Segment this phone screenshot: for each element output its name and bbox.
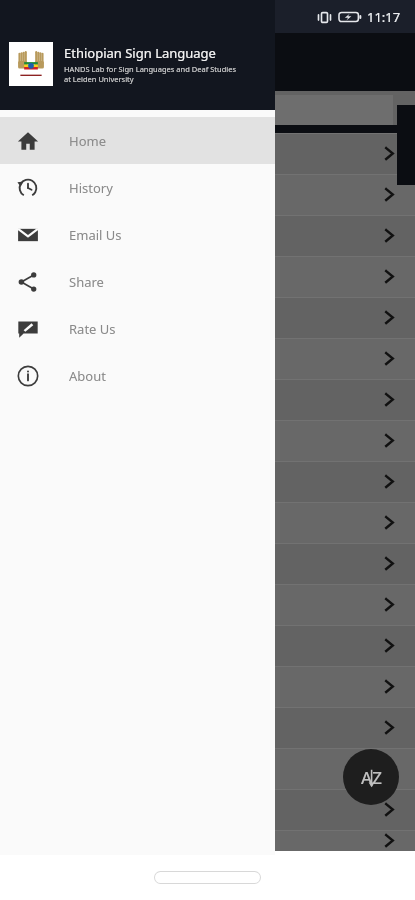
button[interactable]	[0, 133, 415, 174]
button[interactable]	[0, 625, 415, 666]
button[interactable]	[0, 338, 415, 379]
staticText: AZ	[361, 766, 382, 789]
staticText: Share	[69, 273, 104, 291]
staticText: Home	[69, 132, 106, 150]
button[interactable]	[0, 543, 415, 584]
staticText: Rate Us	[69, 320, 116, 338]
button[interactable]: Rate Us	[0, 305, 275, 352]
button[interactable]	[0, 789, 415, 830]
button[interactable]: Share	[0, 258, 275, 305]
button[interactable]	[0, 666, 415, 707]
staticText: HANDS Lab for Sign Languages and Deaf St…	[64, 64, 236, 84]
button[interactable]	[0, 256, 415, 297]
button[interactable]: Email Us	[0, 211, 275, 258]
button[interactable]	[0, 297, 415, 338]
button[interactable]	[10, 95, 393, 125]
button[interactable]	[0, 174, 415, 215]
button[interactable]	[0, 707, 415, 748]
staticText: Ethiopian Sign Language	[64, 44, 216, 62]
button[interactable]: History	[0, 164, 275, 211]
staticText: 11:17	[367, 8, 401, 26]
button[interactable]: Home	[0, 117, 275, 164]
button[interactable]	[0, 748, 415, 789]
staticText: History	[69, 179, 113, 197]
button[interactable]	[0, 461, 415, 502]
button[interactable]: About	[0, 352, 275, 399]
button[interactable]	[0, 502, 415, 543]
button[interactable]	[0, 584, 415, 625]
button[interactable]: Sort A to Z	[343, 749, 399, 805]
button[interactable]	[0, 215, 415, 256]
button[interactable]	[0, 379, 415, 420]
staticText: About	[69, 367, 106, 385]
staticText: Email Us	[69, 226, 122, 244]
button[interactable]	[0, 420, 415, 461]
button[interactable]	[0, 830, 415, 851]
